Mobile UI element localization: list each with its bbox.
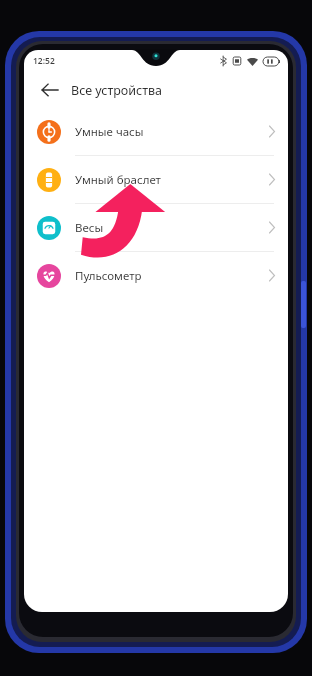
staticText: Пульсометр bbox=[75, 268, 269, 284]
staticText: Все устройства bbox=[71, 82, 163, 99]
staticText: Умный браслет bbox=[75, 172, 269, 188]
button[interactable]: Умный браслет bbox=[24, 156, 288, 203]
button[interactable]: Назад bbox=[38, 78, 62, 102]
button[interactable]: Пульсометр bbox=[24, 252, 288, 299]
button[interactable]: Весы bbox=[24, 204, 288, 251]
staticText: Умные часы bbox=[75, 124, 269, 140]
staticText: Весы bbox=[75, 220, 269, 236]
button[interactable]: Умные часы bbox=[24, 108, 288, 155]
staticText: 12:52 bbox=[33, 55, 55, 67]
